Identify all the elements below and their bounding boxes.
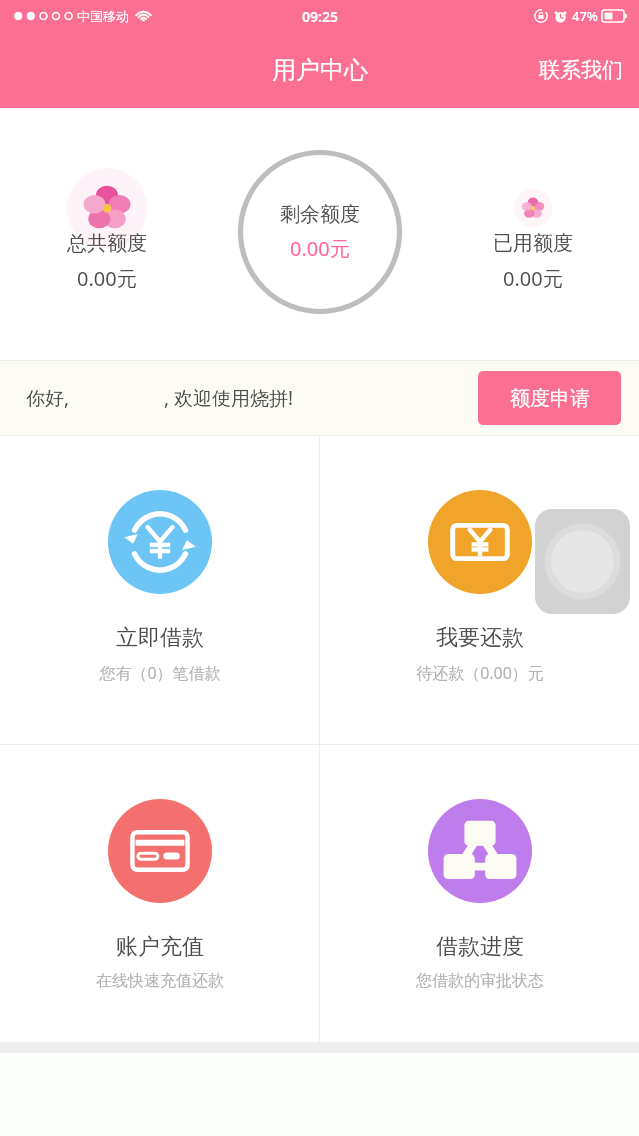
staticText: 已用额度: [493, 231, 573, 256]
staticText: 0.00元: [77, 265, 137, 292]
staticText: 09:25: [302, 7, 338, 26]
staticText: 账户充值: [116, 933, 204, 961]
staticText: 0.00元: [290, 235, 350, 262]
staticText: 中国移动: [77, 8, 129, 24]
staticText: 0.00元: [503, 265, 563, 292]
staticText: 您有（0）笔借款: [99, 662, 221, 684]
button[interactable]: 我要还款: [320, 436, 639, 744]
button[interactable]: 借款进度: [320, 745, 639, 1042]
staticText: 借款进度: [436, 933, 524, 961]
staticText: 在线快速充值还款: [96, 971, 224, 991]
staticText: 待还款（0.00）元: [416, 662, 544, 684]
button[interactable]: 联系我们: [523, 47, 639, 93]
other: Image placeholder: [535, 509, 630, 614]
button[interactable]: 立即借款: [0, 436, 319, 744]
staticText: 用户中心: [272, 55, 368, 85]
staticText: 立即借款: [116, 624, 204, 652]
button[interactable]: 额度申请: [478, 371, 621, 425]
staticText: 您借款的审批状态: [416, 971, 544, 991]
staticText: 你好,: [26, 385, 70, 411]
button[interactable]: 账户充值: [0, 745, 319, 1042]
staticText: 总共额度: [67, 231, 147, 256]
staticText: 联系我们: [539, 57, 623, 83]
staticText: 47%: [572, 7, 598, 25]
staticText: , 欢迎使用烧拼!: [164, 385, 294, 411]
staticText: 我要还款: [436, 624, 524, 652]
staticText: 剩余额度: [280, 202, 360, 227]
staticText: 额度申请: [510, 386, 590, 411]
